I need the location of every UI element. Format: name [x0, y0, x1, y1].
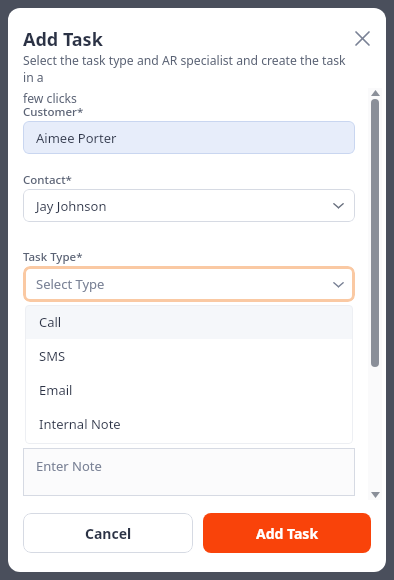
button[interactable]: Cancel: [23, 513, 193, 553]
staticText: Enter Note: [36, 457, 102, 475]
button[interactable]: Enter Note: [23, 448, 355, 496]
staticText: Email: [39, 381, 73, 399]
button[interactable]: Select Type: [23, 266, 355, 302]
button[interactable]: Close: [348, 24, 376, 52]
staticText: Call: [39, 313, 62, 331]
staticText: few clicks: [23, 90, 77, 107]
staticText: Jay Johnson: [36, 197, 107, 215]
staticText: Cancel: [85, 524, 132, 543]
button[interactable]: Jay Johnson: [23, 189, 355, 222]
button[interactable]: Add Task: [203, 513, 371, 553]
staticText: Select Type: [36, 275, 105, 293]
staticText: Task Type*: [23, 249, 83, 265]
button[interactable]: SMS: [25, 339, 353, 373]
button[interactable]: Internal Note: [25, 407, 353, 441]
button[interactable]: Call: [25, 305, 353, 339]
staticText: Aimee Porter: [36, 129, 117, 147]
staticText: Select the task type and AR specialist a…: [23, 52, 358, 86]
staticText: Add Task: [23, 27, 103, 52]
staticText: Contact*: [23, 172, 72, 188]
button[interactable]: Email: [25, 373, 353, 407]
staticText: Add Task: [256, 524, 319, 543]
staticText: Internal Note: [39, 415, 121, 433]
staticText: Customer*: [23, 104, 84, 120]
staticText: SMS: [39, 347, 66, 365]
button[interactable]: Aimee Porter: [23, 121, 355, 154]
